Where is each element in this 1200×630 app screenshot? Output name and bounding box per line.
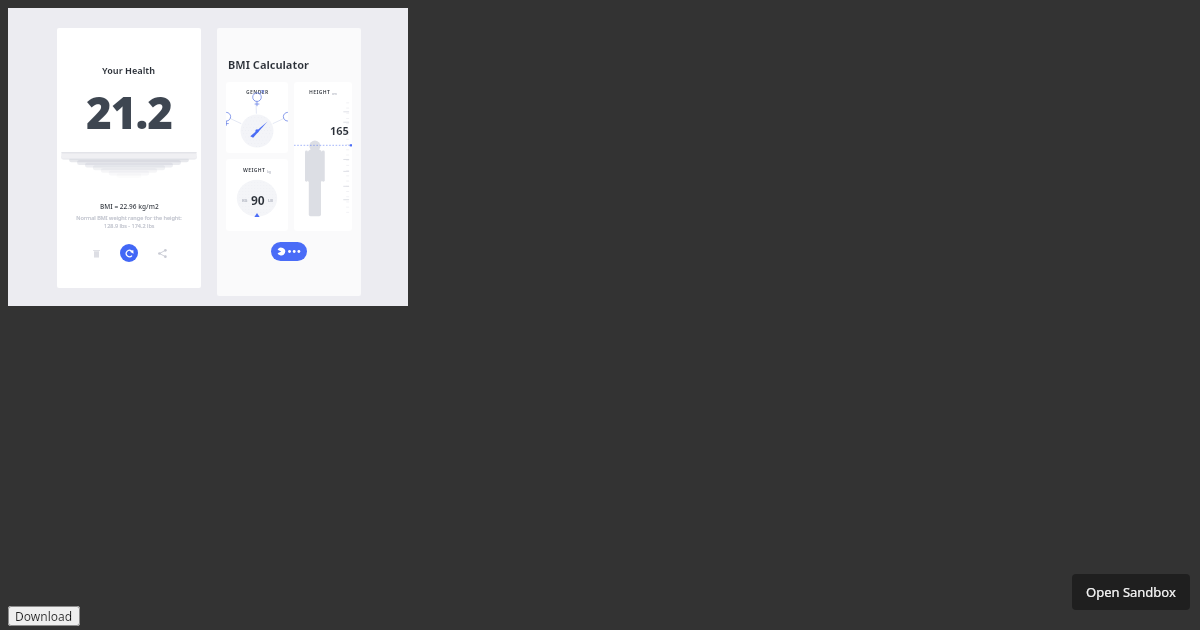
staticText: 128.9 lbs - 174.2 lbs xyxy=(104,222,155,229)
button[interactable]: Recalculate xyxy=(120,244,138,262)
button[interactable]: Calculate xyxy=(271,242,307,261)
staticText: 165 xyxy=(330,123,349,138)
staticText: Normal BMI weight range for the height: xyxy=(76,214,182,221)
button[interactable]: Open Sandbox xyxy=(1072,574,1190,610)
staticText: kg xyxy=(266,169,271,174)
staticText: 90 xyxy=(251,192,265,208)
staticText: HEIGHT xyxy=(309,89,331,96)
button[interactable]: BMI Calculator xyxy=(217,28,361,296)
staticText: 21.2 xyxy=(86,82,173,142)
staticText: LB xyxy=(268,198,273,203)
staticText: GENDER xyxy=(246,89,269,96)
staticText: WEIGHT xyxy=(243,167,266,174)
staticText: BMI = 22.96 kg/m2 xyxy=(100,202,159,211)
staticText: Download xyxy=(15,608,73,624)
staticText: Your Health xyxy=(102,64,156,76)
button[interactable]: HEIGHT xyxy=(294,82,352,231)
button[interactable]: Your Health xyxy=(57,28,201,288)
button[interactable]: Download xyxy=(8,606,80,626)
button[interactable]: WEIGHT xyxy=(226,159,288,231)
staticText: cm xyxy=(331,91,337,96)
button[interactable]: Delete xyxy=(84,241,108,265)
staticText: KG xyxy=(242,198,248,203)
button[interactable]: GENDER xyxy=(226,82,288,153)
button[interactable]: Share xyxy=(150,241,174,265)
staticText: BMI Calculator xyxy=(228,57,310,72)
staticText: Open Sandbox xyxy=(1086,583,1176,601)
